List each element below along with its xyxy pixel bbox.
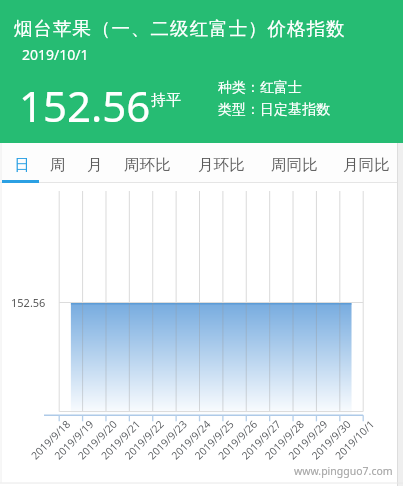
staticText: 类型：日定基指数 (218, 101, 330, 119)
button[interactable]: 周 (40, 145, 76, 184)
button[interactable]: 月 (77, 145, 113, 184)
staticText: 2019/10/1 (22, 45, 89, 64)
staticText: 日 (14, 155, 30, 175)
button[interactable]: 周环比 (120, 145, 174, 184)
staticText: 周环比 (124, 155, 171, 175)
button[interactable]: 周同比 (267, 145, 321, 184)
staticText: 持平 (151, 91, 181, 110)
button[interactable]: 月同比 (339, 145, 393, 184)
staticText: 月环比 (198, 155, 245, 175)
staticText: 周同比 (271, 155, 318, 175)
staticText: 种类：红富士 (218, 79, 302, 97)
staticText: 月 (87, 155, 103, 175)
button[interactable]: 日 (4, 145, 40, 184)
staticText: 烟台苹果（一、二级红富士）价格指数 (14, 17, 346, 40)
staticText: 月同比 (343, 155, 390, 175)
staticText: 周 (50, 155, 66, 175)
button[interactable]: 月环比 (194, 145, 248, 184)
staticText: 152.56 (19, 77, 151, 134)
